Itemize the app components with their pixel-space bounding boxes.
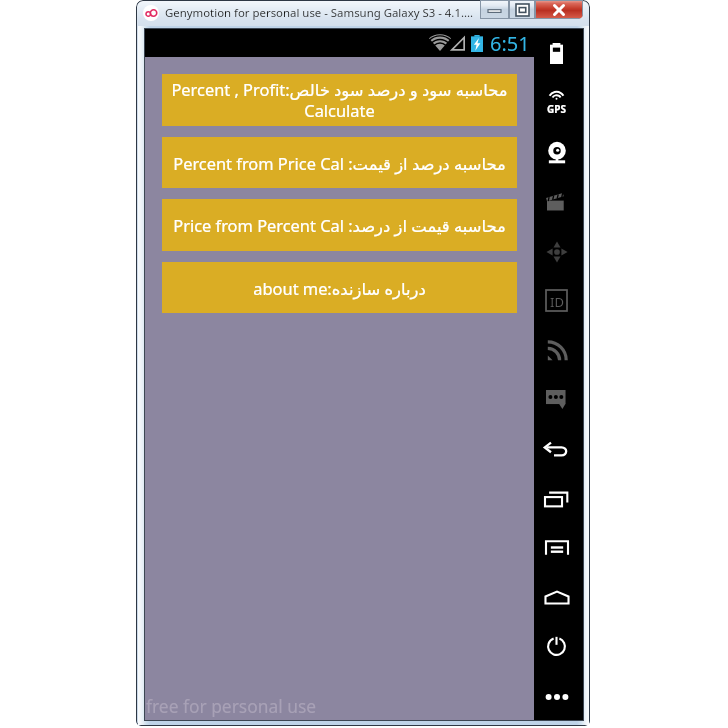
button[interactable]: Percent , Profit:محاسبه سود و درصد سود خ…	[162, 74, 517, 126]
button[interactable]: Price from Percent Cal :محاسبه قیمت از د…	[162, 199, 517, 251]
staticText: ID	[550, 293, 564, 311]
button[interactable]: Power	[532, 622, 581, 671]
button[interactable]: about me:درباره سازنده	[162, 262, 517, 313]
staticText: GPS	[547, 102, 566, 116]
staticText: Percent , Profit:محاسبه سود و درصد سود خ…	[171, 78, 508, 122]
button[interactable]: Home	[532, 573, 581, 622]
button[interactable]: Dpad	[532, 227, 581, 276]
button[interactable]: Menu	[532, 523, 581, 572]
button[interactable]: GPS	[532, 79, 581, 128]
button[interactable]: Maximize	[509, 0, 535, 19]
button[interactable]: Recents	[532, 474, 581, 523]
staticText: free for personal use	[146, 694, 317, 718]
staticText: 6:51	[490, 30, 530, 57]
button[interactable]: Battery	[532, 29, 581, 78]
button[interactable]: Back	[532, 425, 581, 474]
button[interactable]: SMS	[532, 375, 581, 424]
staticText: Genymotion for personal use - Samsung Ga…	[165, 5, 474, 21]
button[interactable]: Minimize	[480, 0, 509, 19]
staticText: Price from Percent Cal :محاسبه قیمت از د…	[173, 214, 506, 236]
button[interactable]: More	[532, 672, 581, 721]
button[interactable]: Camera	[532, 128, 581, 177]
staticText: about me:درباره سازنده	[253, 277, 426, 299]
button[interactable]: Close	[535, 0, 583, 19]
button[interactable]: Video	[532, 178, 581, 227]
button[interactable]: ID	[532, 276, 581, 325]
button[interactable]: Percent from Price Cal :محاسبه درصد از ق…	[162, 137, 517, 188]
staticText: Percent from Price Cal :محاسبه درصد از ق…	[173, 152, 506, 174]
button[interactable]: Network	[532, 326, 581, 375]
